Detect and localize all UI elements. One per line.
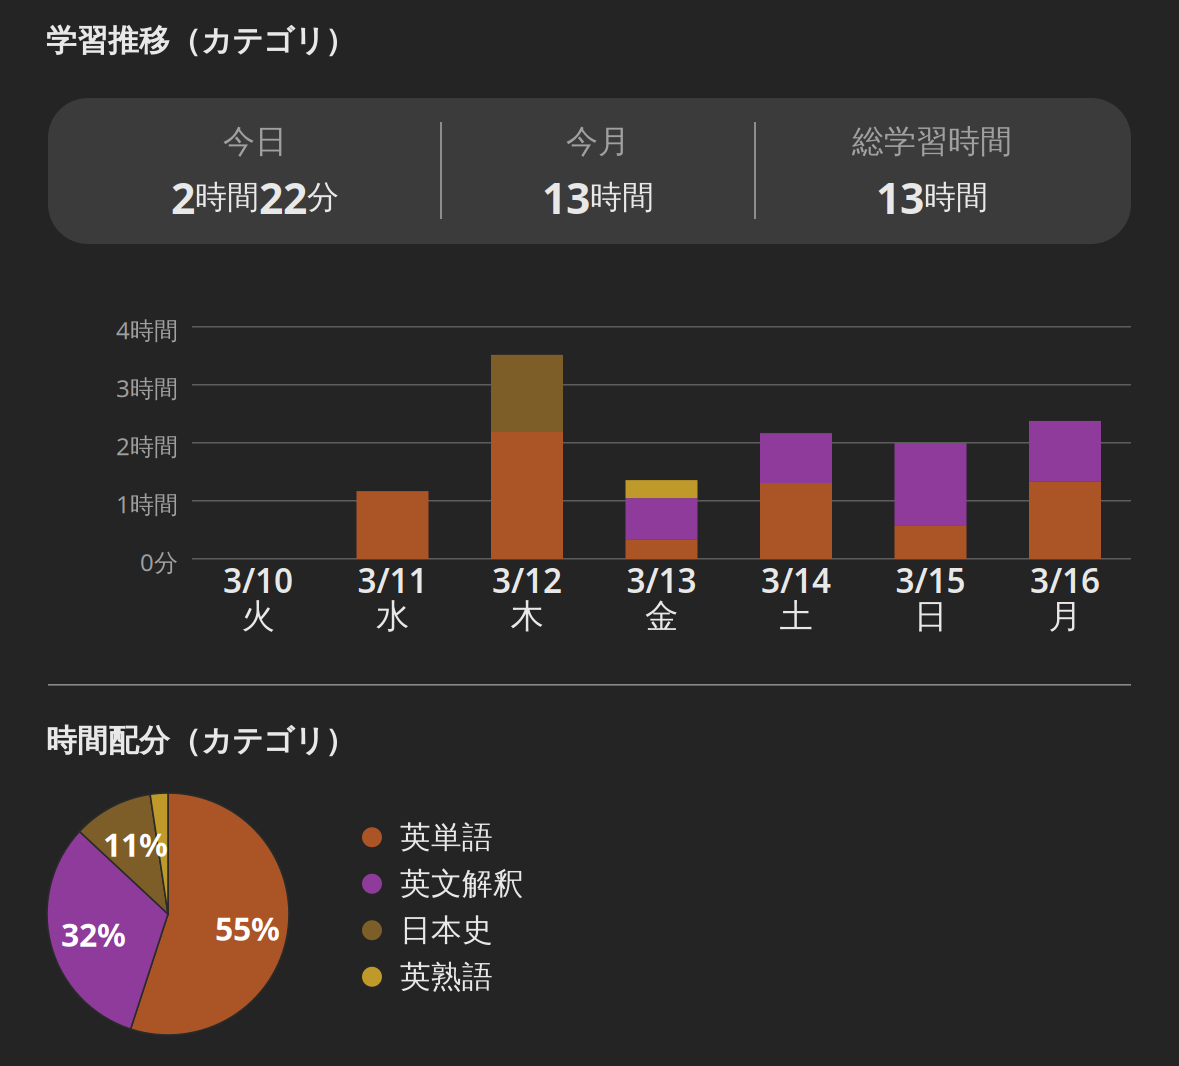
staticText: 2時間 bbox=[116, 430, 178, 462]
staticText: 金 bbox=[645, 596, 678, 637]
staticText: 3/15 bbox=[895, 558, 965, 602]
staticText: 英熟語 bbox=[400, 958, 493, 996]
staticText: 総学習時間 bbox=[852, 122, 1012, 161]
button[interactable]: 英単語 bbox=[362, 814, 493, 860]
staticText: 分 bbox=[307, 178, 339, 217]
staticText: 11% bbox=[103, 823, 168, 865]
staticText: 3/10 bbox=[223, 558, 293, 602]
staticText: 水 bbox=[376, 596, 409, 637]
staticText: 3/14 bbox=[761, 558, 831, 602]
staticText: 32% bbox=[61, 913, 126, 955]
staticText: 日本史 bbox=[400, 911, 493, 949]
staticText: 55% bbox=[215, 907, 280, 949]
staticText: 今月 bbox=[566, 122, 630, 161]
staticText: 0分 bbox=[140, 546, 178, 578]
staticText: 13 bbox=[876, 169, 924, 226]
staticText: 3/16 bbox=[1030, 558, 1100, 602]
staticText: 3/13 bbox=[626, 558, 696, 602]
staticText: 13 bbox=[542, 169, 590, 226]
staticText: 学習推移（カテゴリ） bbox=[46, 22, 356, 60]
staticText: 時間配分（カテゴリ） bbox=[46, 722, 356, 760]
staticText: 時間 bbox=[924, 178, 988, 217]
staticText: 3/11 bbox=[357, 558, 427, 602]
button[interactable]: 英文解釈 bbox=[362, 860, 524, 907]
staticText: 木 bbox=[510, 596, 543, 637]
staticText: 今日 bbox=[223, 122, 287, 161]
staticText: 土 bbox=[779, 596, 812, 637]
button[interactable]: 今日 bbox=[48, 98, 1131, 244]
staticText: 3/12 bbox=[492, 558, 562, 602]
staticText: 月 bbox=[1048, 596, 1081, 637]
button[interactable]: 日本史 bbox=[362, 907, 493, 953]
staticText: 火 bbox=[241, 596, 274, 637]
staticText: 時間 bbox=[195, 178, 259, 217]
staticText: 4時間 bbox=[116, 314, 178, 346]
staticText: 時間 bbox=[590, 178, 654, 217]
staticText: 22 bbox=[259, 169, 307, 226]
staticText: 英単語 bbox=[400, 818, 493, 856]
staticText: 2 bbox=[171, 169, 195, 226]
staticText: 1時間 bbox=[116, 488, 178, 520]
staticText: 英文解釈 bbox=[400, 865, 524, 903]
staticText: 3時間 bbox=[116, 372, 178, 404]
button[interactable]: 英熟語 bbox=[362, 953, 493, 1000]
staticText: 日 bbox=[914, 596, 947, 637]
